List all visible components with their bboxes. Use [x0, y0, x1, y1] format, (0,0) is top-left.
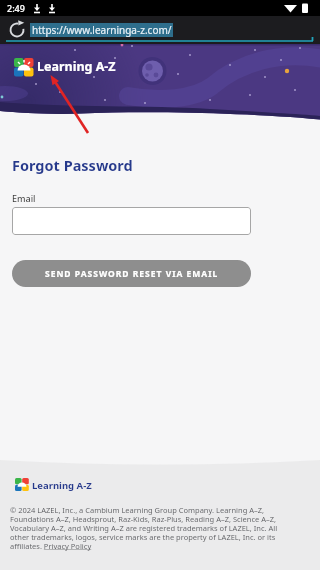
staticText: 2:49	[7, 2, 25, 14]
button[interactable]: SEND PASSWORD RESET VIA EMAIL	[12, 260, 251, 287]
staticText: SEND PASSWORD RESET VIA EMAIL	[45, 268, 219, 280]
button[interactable]: https://www.learninga-z.com/	[30, 23, 173, 37]
staticText: Learning A-Z	[32, 479, 92, 492]
staticText: Forgot Password	[12, 155, 133, 175]
staticText: https://www.learninga-z.com/	[32, 23, 172, 37]
staticText: Email	[12, 192, 36, 204]
button[interactable]	[12, 207, 251, 235]
button[interactable]: © 2024 LAZEL, Inc., a Cambium Learning G…	[10, 505, 318, 551]
staticText: Learning A-Z	[37, 58, 116, 75]
